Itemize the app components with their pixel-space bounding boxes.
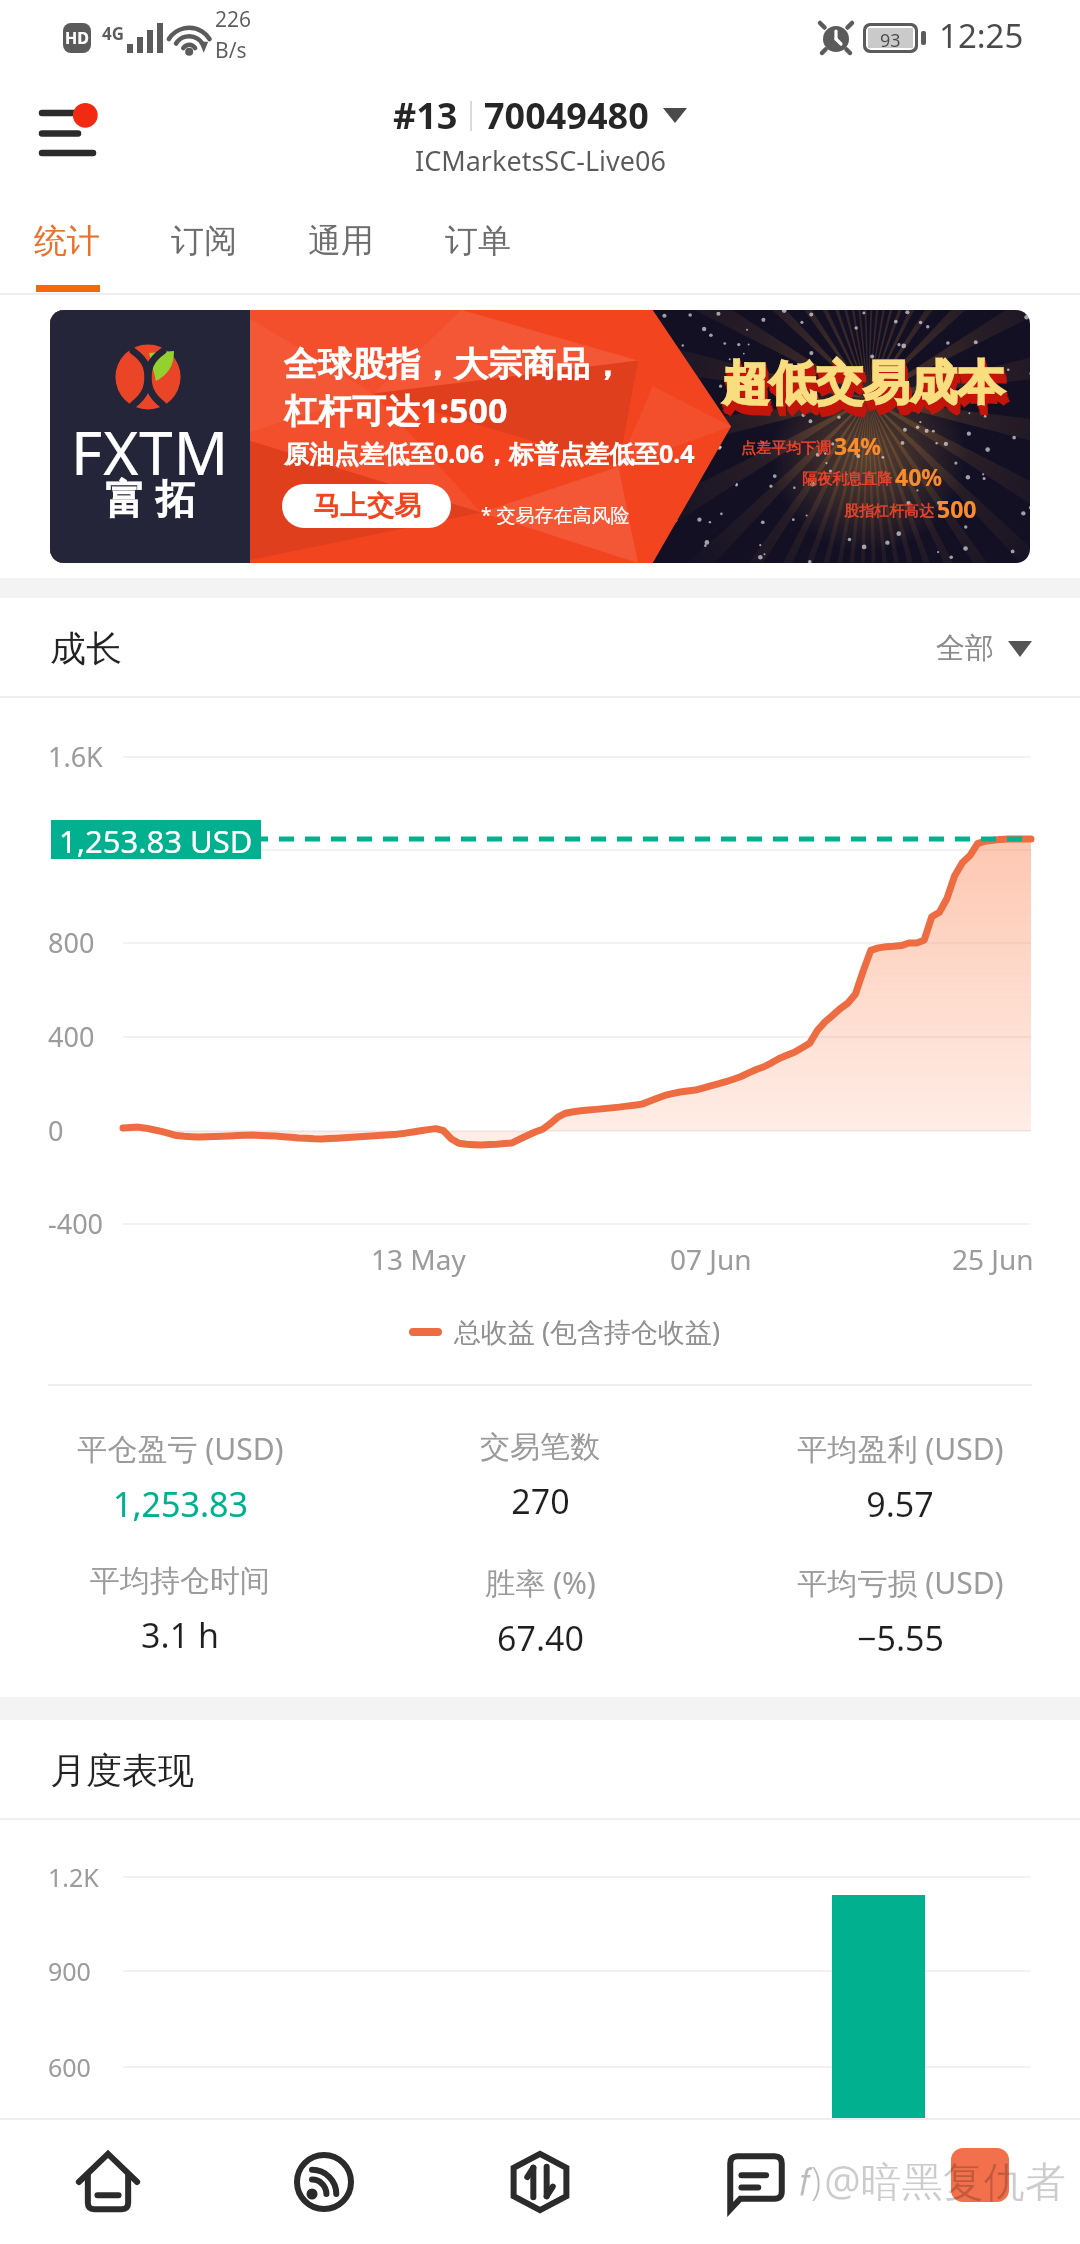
staticText: 平均持仓时间 [90, 1562, 270, 1600]
staticText: 25 Jun [952, 1240, 1034, 1278]
staticText: -400 [48, 1205, 104, 1242]
staticText: 800 [48, 924, 95, 961]
staticText: 34% [834, 430, 882, 461]
staticText: 40% [895, 461, 943, 492]
staticText: 超低交易成本 [723, 356, 1005, 415]
staticText: 超低交易成本 [724, 362, 1006, 421]
staticText: 1.6K [48, 738, 103, 775]
staticText: 超低交易成本 [723, 358, 1005, 417]
staticText: 订单 [445, 220, 511, 262]
staticText: 超低交易成本 [724, 361, 1006, 420]
button[interactable]: 统计 [34, 188, 171, 295]
staticText: 1,253.83 USD [59, 820, 253, 859]
staticText: 500 [937, 493, 977, 524]
staticText: 总收益 (包含持仓收益) [454, 1313, 721, 1350]
staticText: 3.1 h [141, 1612, 219, 1658]
staticText: 4G [102, 22, 125, 45]
button[interactable]: FXTM [50, 310, 1030, 563]
staticText: 𝑓) [799, 2154, 822, 2206]
staticText: 全部 [936, 630, 994, 667]
staticText: 超低交易成本 [722, 355, 1004, 414]
staticText: * 交易存在高风险 [481, 502, 630, 528]
staticText: 270 [511, 1478, 570, 1524]
button[interactable]: 马上交易 [282, 484, 451, 528]
staticText: 13 May [371, 1240, 466, 1278]
staticText: 70049480 [484, 91, 649, 140]
staticText: 400 [48, 1018, 95, 1055]
staticText: 超低交易成本 [722, 354, 1004, 413]
button[interactable]: Home [0, 2120, 216, 2244]
staticText: 9.57 [866, 1481, 934, 1527]
staticText: 超低交易成本 [723, 357, 1005, 416]
staticText: 平仓盈亏 (USD) [77, 1428, 284, 1469]
staticText: 统计 [34, 220, 100, 262]
button[interactable]: 订单 [445, 188, 582, 295]
staticText: 226 [215, 5, 252, 34]
staticText: 超低交易成本 [725, 364, 1007, 423]
staticText: 平均亏损 (USD) [797, 1562, 1004, 1603]
staticText: 隔夜利息直降 [802, 470, 892, 489]
staticText: 交易笔数 [480, 1428, 600, 1466]
staticText: 67.40 [497, 1615, 584, 1661]
button[interactable]: 订阅 [171, 188, 308, 295]
staticText: 超低交易成本 [724, 360, 1006, 419]
button[interactable]: Trade [432, 2120, 648, 2244]
staticText: 93 [880, 28, 901, 48]
staticText: 月度表现 [50, 1748, 194, 1793]
button[interactable]: Menu [0, 88, 120, 178]
button[interactable]: 全部 [936, 630, 1032, 667]
staticText: 600 [48, 2050, 91, 2084]
staticText: 成长 [50, 626, 122, 671]
button[interactable]: 通用 [308, 188, 445, 295]
staticText: 原油点差低至0.06，标普点差低至0.4 [284, 436, 695, 470]
staticText: 全球股指，大宗商品， [284, 343, 624, 386]
staticText: 马上交易 [313, 489, 421, 523]
staticText: 900 [48, 1954, 91, 1988]
staticText: 超低交易成本 [725, 363, 1007, 422]
staticText: 订阅 [171, 220, 237, 262]
staticText: 胜率 (%) [485, 1562, 596, 1603]
staticText: #13 [393, 91, 458, 140]
staticText: −5.55 [857, 1615, 944, 1661]
staticText: 1.2K [48, 1860, 99, 1894]
staticText: ICMarketsSC-Live06 [415, 142, 666, 179]
staticText: 1,253.83 [113, 1481, 248, 1527]
staticText: 通用 [308, 220, 374, 262]
staticText: 0 [48, 1112, 64, 1149]
staticText: 平均盈利 (USD) [797, 1428, 1004, 1469]
staticText: B/s [215, 36, 247, 65]
button[interactable]: Quotes [216, 2120, 432, 2244]
staticText: @暗黑复仇者 [824, 2152, 1066, 2208]
staticText: HD [65, 27, 89, 49]
staticText: 12:25 [939, 13, 1024, 58]
staticText: 股指杠杆高达 [844, 502, 934, 521]
staticText: 富 拓 [105, 470, 196, 525]
button[interactable]: Messages [648, 2120, 864, 2244]
staticText: 杠杆可达1:500 [284, 387, 508, 433]
staticText: 07 Jun [670, 1240, 752, 1278]
staticText: 点差平均下调 [741, 439, 831, 458]
staticText: FXTM [71, 411, 230, 493]
